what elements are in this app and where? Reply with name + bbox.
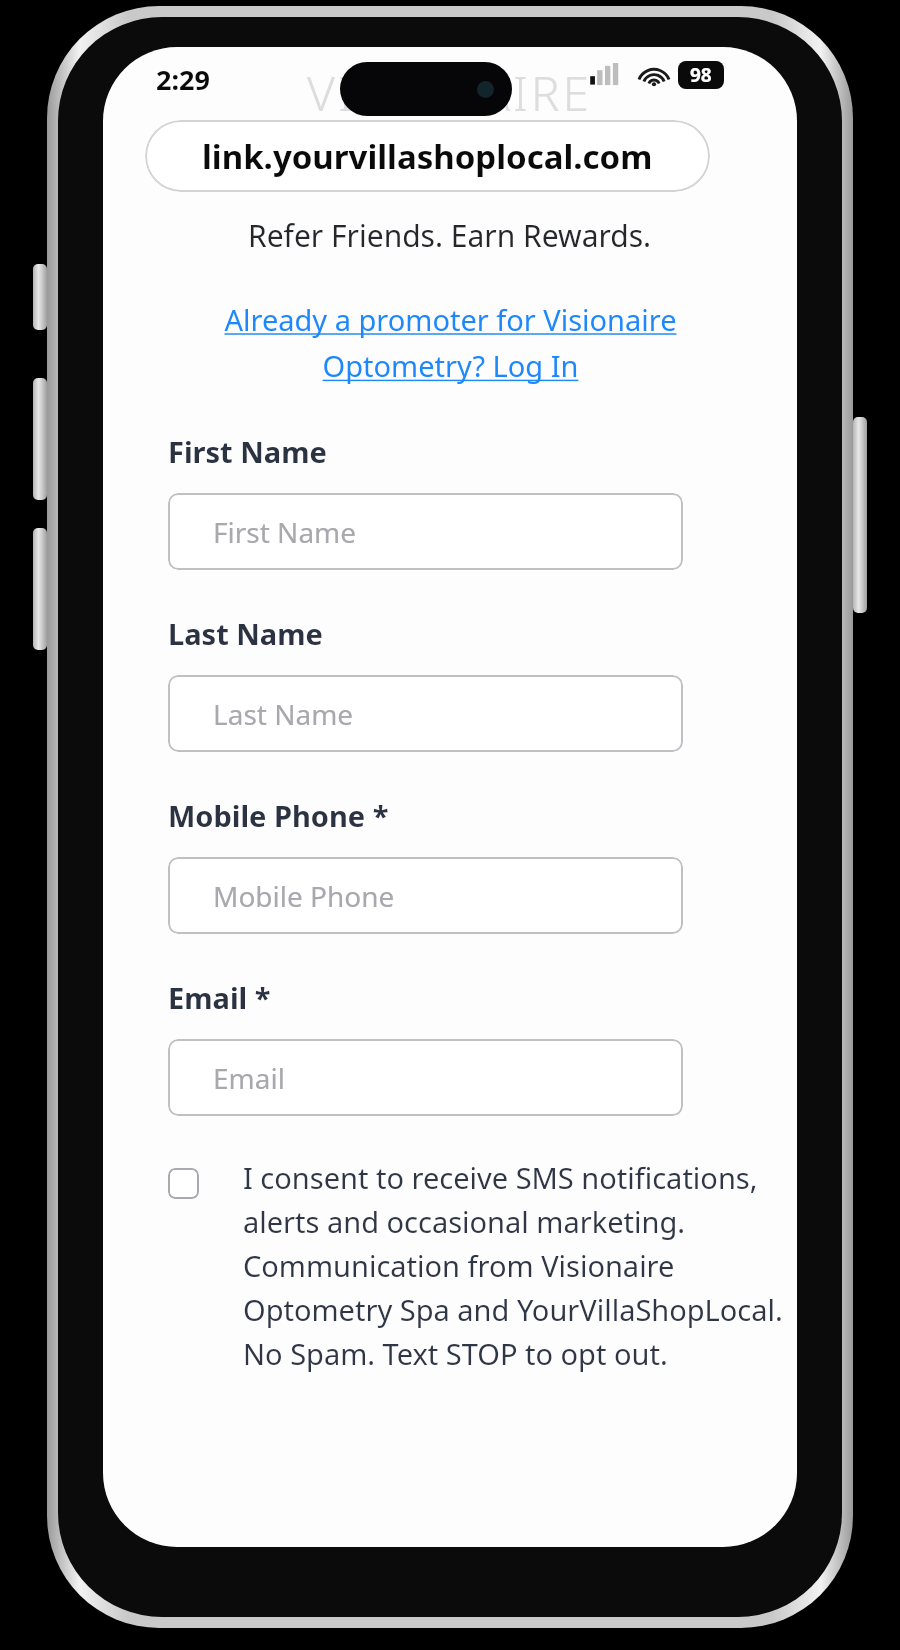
staticText: Last Name bbox=[168, 614, 323, 653]
button[interactable]: SMS consent checkbox bbox=[168, 1158, 783, 1373]
staticText: 2:29 bbox=[156, 61, 210, 98]
staticText: Refer Friends. Earn Rewards. bbox=[248, 215, 652, 256]
staticText: Email * bbox=[168, 978, 271, 1017]
button[interactable]: Already a promoter for Visionaire Optome… bbox=[103, 300, 797, 386]
staticText: Already a promoter for Visionaire Optome… bbox=[224, 300, 677, 386]
button[interactable]: First Name bbox=[168, 493, 683, 570]
staticText: Mobile Phone * bbox=[168, 796, 389, 835]
button[interactable]: link.yourvillashoplocal.com bbox=[145, 120, 710, 192]
staticText: link.yourvillashoplocal.com bbox=[202, 134, 653, 179]
staticText: First Name bbox=[168, 432, 327, 471]
staticText: I consent to receive SMS notifications, … bbox=[243, 1158, 783, 1373]
staticText: Email bbox=[213, 1059, 285, 1097]
staticText: VISIONAIRE bbox=[307, 60, 593, 125]
button[interactable]: Email bbox=[168, 1039, 683, 1116]
other: SMS consent checkbox bbox=[168, 1168, 199, 1199]
staticText: 98 bbox=[690, 62, 712, 88]
staticText: Mobile Phone bbox=[213, 877, 395, 915]
staticText: Last Name bbox=[213, 695, 354, 733]
staticText: First Name bbox=[213, 513, 357, 551]
button[interactable]: Last Name bbox=[168, 675, 683, 752]
button[interactable]: Mobile Phone bbox=[168, 857, 683, 934]
staticText: OPTOMETRY SPA bbox=[358, 127, 542, 147]
